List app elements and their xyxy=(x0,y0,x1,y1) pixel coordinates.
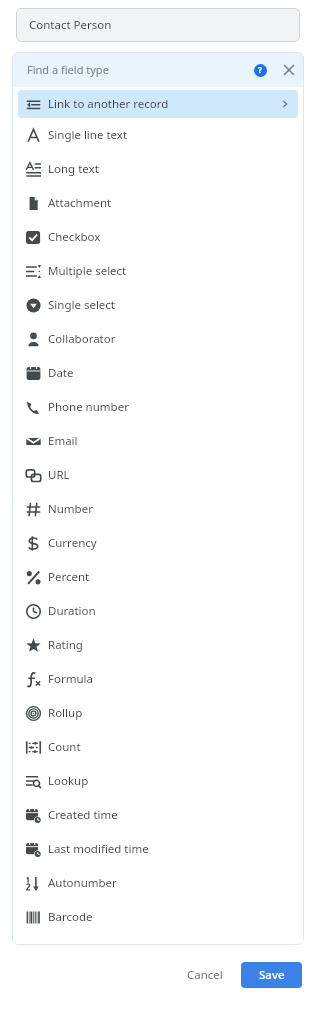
button[interactable]: Cancel xyxy=(177,961,233,989)
staticText: Rollup xyxy=(48,705,298,721)
button[interactable]: Rollup xyxy=(18,696,298,730)
button[interactable]: Date xyxy=(18,356,298,390)
button[interactable]: Save xyxy=(241,962,302,988)
button[interactable]: Duration xyxy=(18,594,298,628)
staticText: Save xyxy=(259,967,285,983)
button[interactable]: Checkbox xyxy=(18,220,298,254)
staticText: ? xyxy=(258,64,263,76)
staticText: Attachment xyxy=(48,195,298,211)
staticText: Single line text xyxy=(48,127,298,143)
staticText: Date xyxy=(48,365,298,381)
button[interactable]: Single line text xyxy=(18,118,298,152)
staticText: Contact Person xyxy=(29,17,112,33)
button[interactable]: Link to another record xyxy=(18,90,298,118)
staticText: Checkbox xyxy=(48,229,298,245)
staticText: Phone number xyxy=(48,399,298,415)
staticText: Find a field type xyxy=(27,62,246,77)
button[interactable]: Lookup xyxy=(18,764,298,798)
staticText: URL xyxy=(48,467,298,483)
button[interactable]: Last modified time xyxy=(18,832,298,866)
staticText: Number xyxy=(48,501,298,517)
staticText: Multiple select xyxy=(48,263,298,279)
button[interactable]: Count xyxy=(18,730,298,764)
staticText: Lookup xyxy=(48,773,298,789)
button[interactable]: Contact Person xyxy=(16,8,300,42)
button[interactable]: Help xyxy=(246,56,274,84)
button[interactable]: Phone number xyxy=(18,390,298,424)
staticText: Formula xyxy=(48,671,298,687)
button[interactable]: Created time xyxy=(18,798,298,832)
staticText: Long text xyxy=(48,161,298,177)
button[interactable]: Collaborator xyxy=(18,322,298,356)
staticText: Rating xyxy=(48,637,298,653)
staticText: Cancel xyxy=(187,967,223,983)
staticText: Percent xyxy=(48,569,298,585)
button[interactable]: Formula xyxy=(18,662,298,696)
staticText: Created time xyxy=(48,807,298,823)
staticText: Single select xyxy=(48,297,298,313)
staticText: Autonumber xyxy=(48,875,298,891)
button[interactable]: Multiple select xyxy=(18,254,298,288)
staticText: Duration xyxy=(48,603,298,619)
button[interactable]: Long text xyxy=(18,152,298,186)
button[interactable]: Barcode xyxy=(18,900,298,934)
staticText: Count xyxy=(48,739,298,755)
button[interactable]: Attachment xyxy=(18,186,298,220)
staticText: Link to another record xyxy=(48,96,284,112)
button[interactable]: URL xyxy=(18,458,298,492)
button[interactable]: Single select xyxy=(18,288,298,322)
button[interactable]: Email xyxy=(18,424,298,458)
staticText: Barcode xyxy=(48,909,298,925)
button[interactable]: Rating xyxy=(18,628,298,662)
button[interactable]: Number xyxy=(18,492,298,526)
staticText: Email xyxy=(48,433,298,449)
staticText: Collaborator xyxy=(48,331,298,347)
button[interactable]: Currency xyxy=(18,526,298,560)
staticText: Currency xyxy=(48,535,298,551)
button[interactable]: Close xyxy=(274,55,304,85)
staticText: Last modified time xyxy=(48,841,298,857)
button[interactable]: Autonumber xyxy=(18,866,298,900)
button[interactable]: Percent xyxy=(18,560,298,594)
